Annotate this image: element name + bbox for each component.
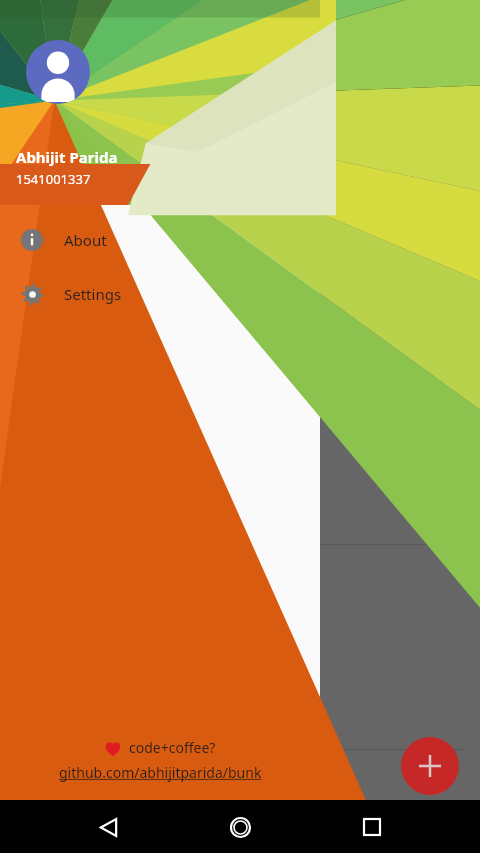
staticText: Settings — [64, 284, 122, 304]
staticText: Abhijit Parida — [16, 147, 118, 167]
button[interactable]: Settings — [0, 267, 320, 321]
button[interactable]: Operating System — [0, 545, 480, 750]
button[interactable]: Recent apps — [348, 803, 396, 851]
button[interactable]: github.com/abhijitparida/bunk — [59, 763, 262, 782]
staticText: github.com/abhijitparida/bunk — [59, 763, 262, 782]
staticText: About — [64, 230, 107, 250]
button[interactable]: Back — [84, 803, 132, 851]
staticText: Computer Theory — [16, 776, 165, 799]
staticText: 1541001337 — [16, 170, 91, 188]
button[interactable]: Design and Analysis of Algorithm and — [0, 305, 480, 545]
button[interactable]: Data Structures — [0, 100, 480, 305]
staticText: Total classes — [16, 183, 104, 203]
staticText: CLASSES — [16, 221, 76, 241]
button[interactable]: More options — [424, 41, 472, 89]
staticText: Data Structures — [16, 126, 150, 149]
staticText: code+coffee? — [129, 738, 216, 757]
button[interactable]: About — [0, 213, 320, 267]
button[interactable]: Profile photo — [26, 40, 90, 104]
staticText: Design and Analysis of Algorithm and — [16, 331, 334, 354]
button[interactable]: Home — [216, 803, 264, 851]
button[interactable]: Computer Theory — [0, 750, 480, 853]
button[interactable]: Add subject — [401, 737, 459, 795]
staticText: Attendance — [16, 243, 97, 263]
button[interactable]: Refresh — [376, 41, 424, 89]
